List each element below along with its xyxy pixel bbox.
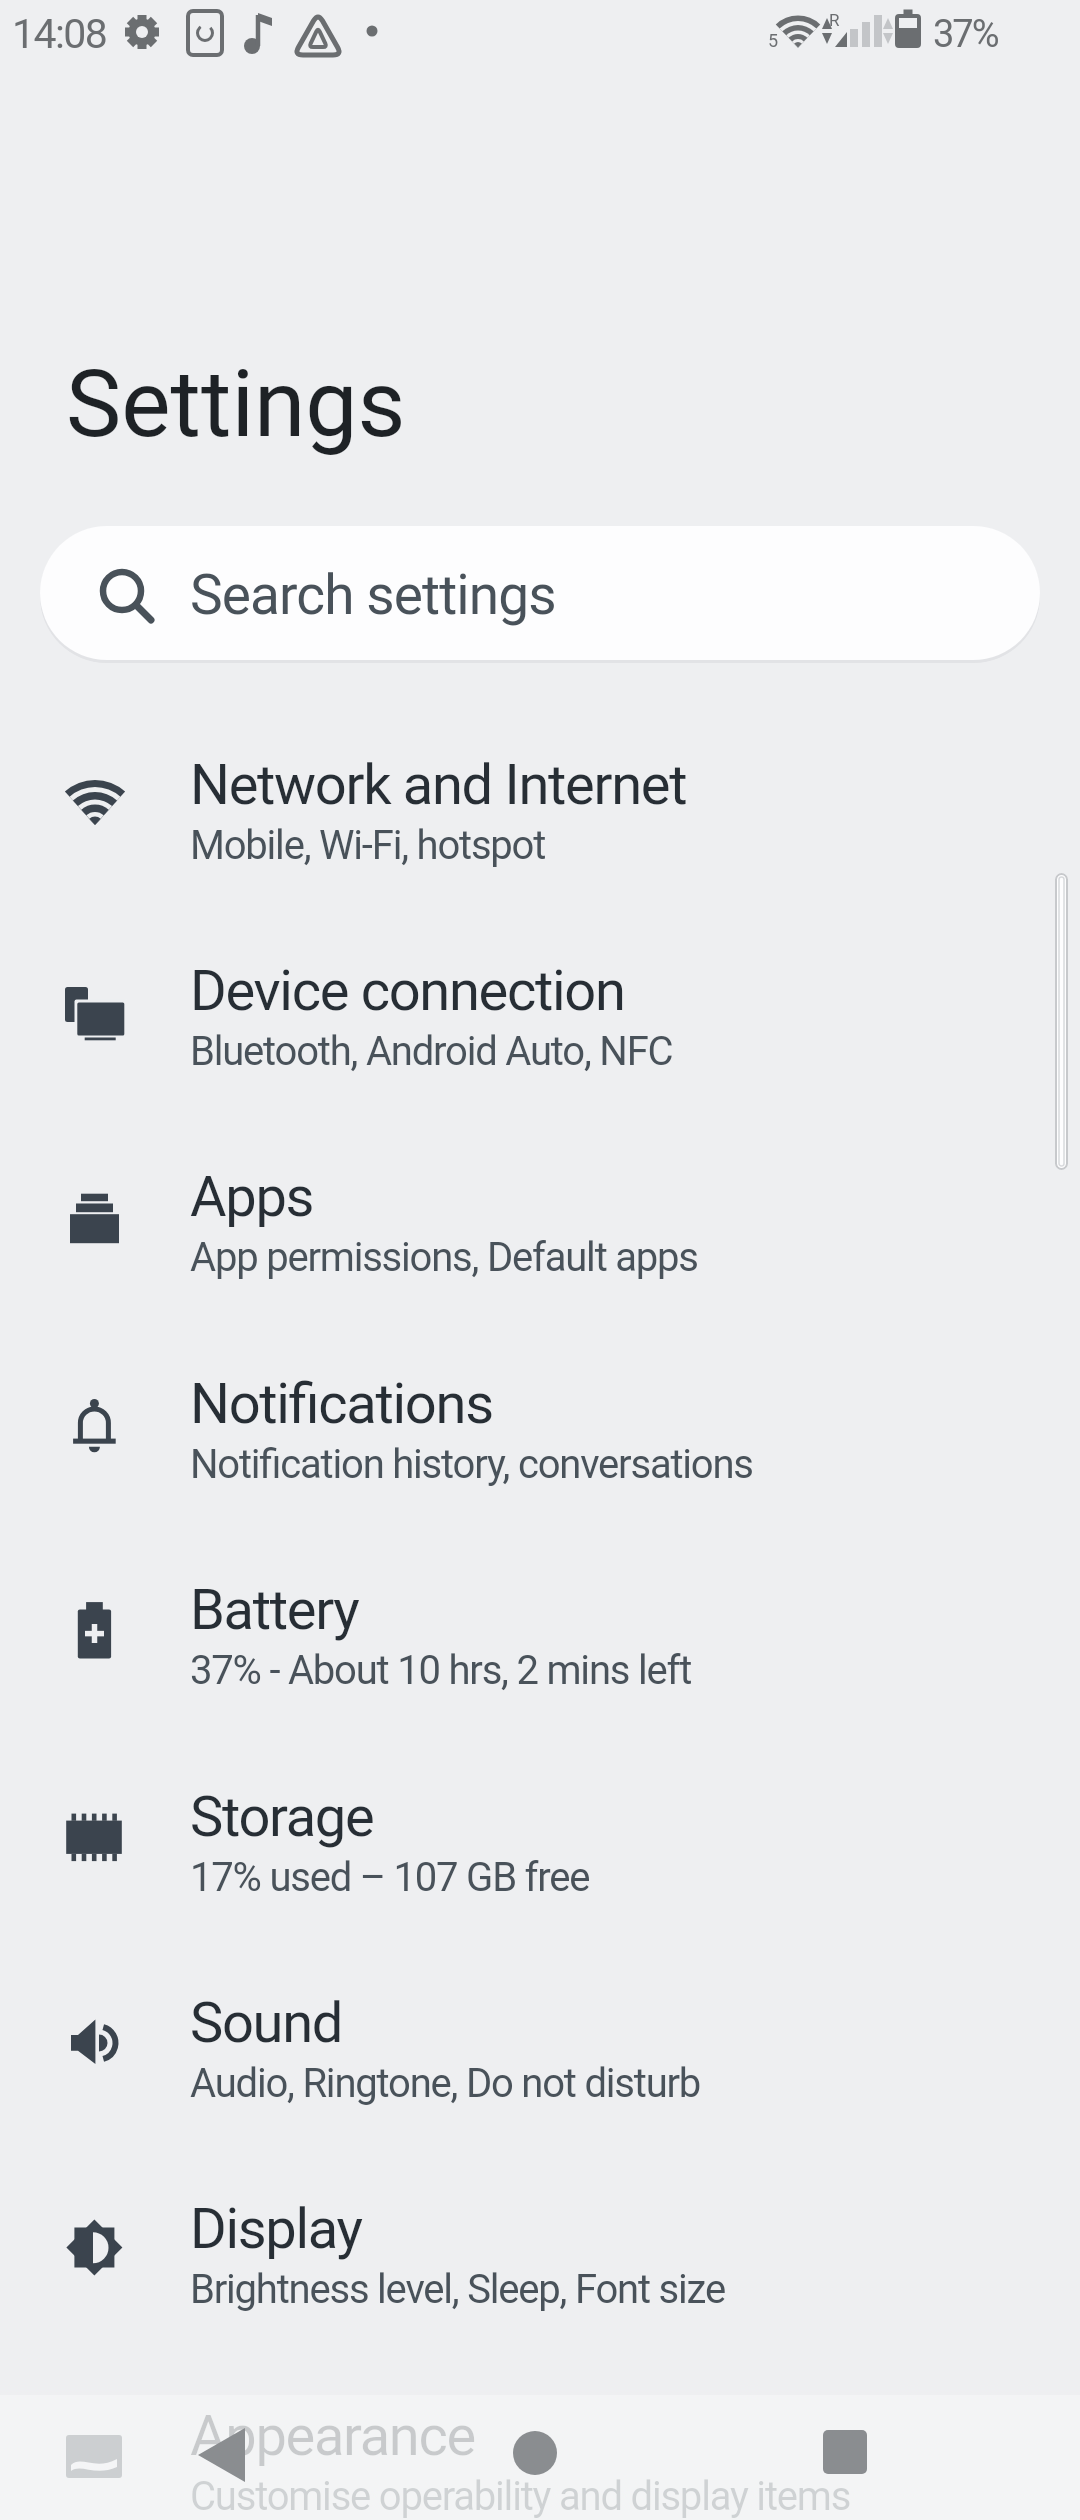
- staticText: Settings: [66, 350, 406, 459]
- staticText: 5: [768, 30, 779, 51]
- staticText: Apps: [190, 1164, 314, 1230]
- button[interactable]: Storage: [0, 1732, 1080, 1938]
- staticText: Storage: [190, 1784, 374, 1850]
- button[interactable]: [782, 2395, 908, 2520]
- staticText: 14:08: [12, 10, 107, 58]
- staticText: Notifications: [190, 1371, 493, 1437]
- staticText: Sound: [190, 1990, 343, 2056]
- button[interactable]: Display: [0, 2144, 1080, 2350]
- staticText: App permissions, Default apps: [190, 1234, 698, 1281]
- staticText: Search settings: [190, 563, 556, 627]
- staticText: Device connection: [190, 958, 625, 1024]
- button[interactable]: Appearance: [0, 2351, 1080, 2520]
- button[interactable]: Device connection: [0, 906, 1080, 1112]
- button[interactable]: Search settings: [40, 526, 1040, 660]
- staticText: Network and Internet: [190, 752, 687, 818]
- button[interactable]: Apps: [0, 1112, 1080, 1318]
- button[interactable]: [472, 2395, 598, 2520]
- staticText: 37% - About 10 hrs, 2 mins left: [190, 1647, 692, 1694]
- staticText: Display: [190, 2196, 362, 2262]
- staticText: Customise operability and display items: [190, 2473, 851, 2520]
- button[interactable]: Notifications: [0, 1319, 1080, 1525]
- button[interactable]: Network and Internet: [0, 700, 1080, 906]
- staticText: Appearance: [190, 2403, 475, 2469]
- button[interactable]: Battery: [0, 1525, 1080, 1731]
- staticText: Mobile, Wi-Fi, hotspot: [190, 822, 546, 869]
- button[interactable]: [159, 2395, 285, 2520]
- staticText: Brightness level, Sleep, Font size: [190, 2266, 725, 2313]
- staticText: Audio, Ringtone, Do not disturb: [190, 2060, 701, 2107]
- staticText: R: [829, 10, 840, 30]
- staticText: 37%: [933, 12, 998, 57]
- button[interactable]: Sound: [0, 1938, 1080, 2144]
- staticText: Battery: [190, 1577, 359, 1643]
- staticText: 17% used – 107 GB free: [190, 1854, 590, 1901]
- staticText: Bluetooth, Android Auto, NFC: [190, 1028, 673, 1075]
- staticText: Notification history, conversations: [190, 1441, 753, 1488]
